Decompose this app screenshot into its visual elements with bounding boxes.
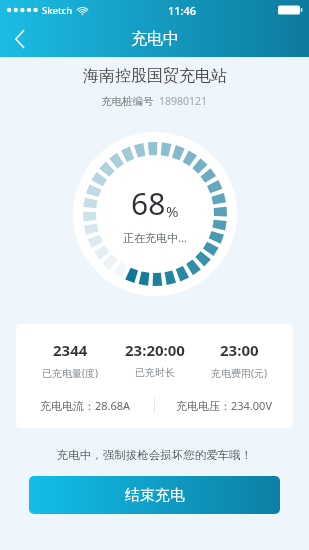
staticText: 已充时长 [135,366,175,379]
staticText: 18980121 [159,94,208,108]
staticText: 充电桩编号 [101,95,154,108]
button[interactable]: 结束充电 [29,476,280,514]
staticText: 11:46 [168,3,197,18]
staticText: Sketch [42,4,73,17]
staticText: 68 [131,183,166,224]
staticText: 正在充电中... [123,230,187,245]
staticText: 充电费用(元) [211,366,267,380]
staticText: 充电中 [131,29,179,49]
staticText: 2344 [53,340,88,360]
staticText: 23:00 [220,340,259,360]
staticText: % [166,201,179,221]
staticText: 充电中，强制拔枪会损坏您的爱车哦！ [0,448,309,462]
staticText: 充电电流：28.68A [40,398,131,413]
staticText: 23:20:00 [125,340,185,360]
staticText: 充电电压：234.00V [176,398,273,413]
button[interactable]: Back [0,20,40,57]
staticText: 结束充电 [125,486,185,505]
staticText: 已充电量(度) [42,366,98,380]
staticText: 海南控股国贸充电站 [83,66,227,86]
